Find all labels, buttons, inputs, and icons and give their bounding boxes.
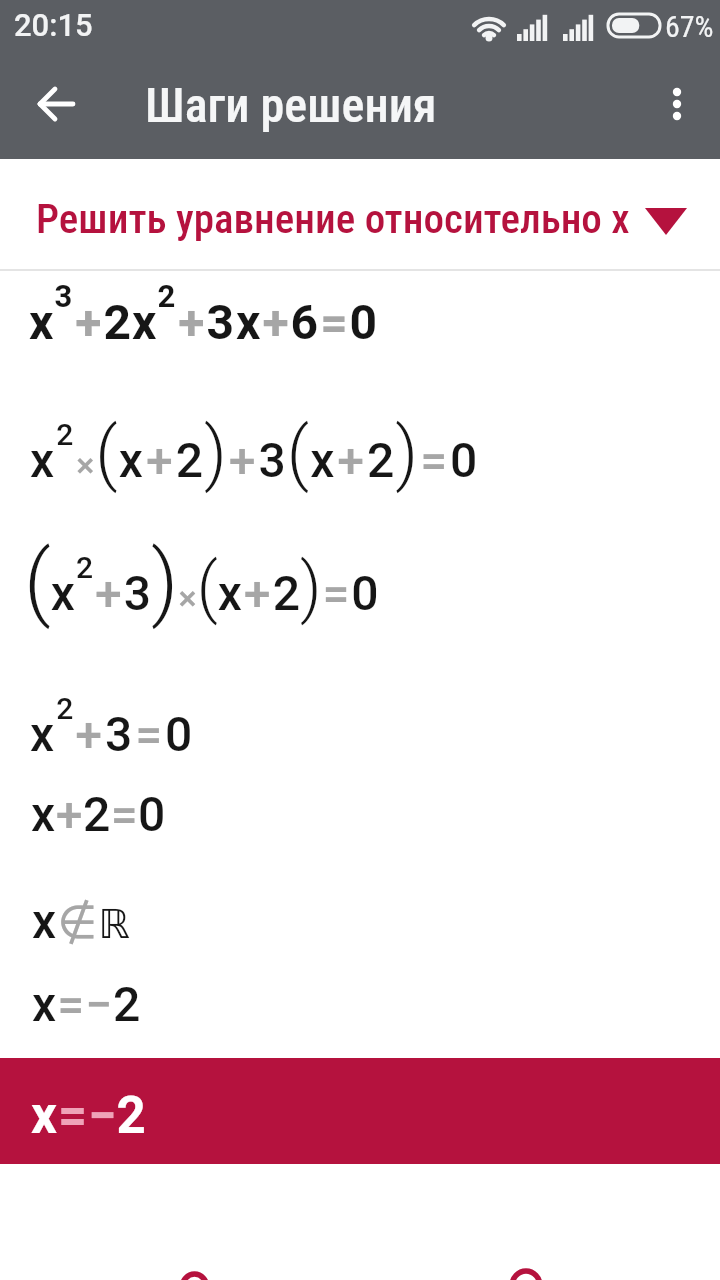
staticText: 67%: [665, 9, 714, 44]
staticText: Решить уравнение относительно x: [36, 195, 630, 243]
staticText: Шаги решения: [145, 77, 437, 133]
staticText: x3+2x2+3x+6=0: [29, 278, 378, 351]
staticText: x=−2: [32, 976, 141, 1032]
staticText: x2×(x+2)+3(x+2)=0: [30, 412, 478, 494]
staticText: 20:15: [14, 7, 93, 43]
staticText: x2+3=0: [30, 691, 193, 763]
staticText: x=−2: [31, 1086, 146, 1146]
staticText: x+2=0: [31, 786, 166, 842]
staticText: x∉ℝ: [32, 893, 130, 949]
staticText: (x2+3)×(x+2)=0: [24, 532, 379, 630]
